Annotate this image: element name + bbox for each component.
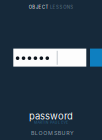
staticText: A: [52, 120, 54, 124]
staticText: J: [36, 5, 38, 10]
staticText: L: [35, 130, 38, 136]
staticText: L: [58, 120, 60, 124]
staticText: C: [42, 5, 45, 10]
staticText: S: [60, 5, 63, 10]
staticText: E: [38, 5, 41, 10]
staticText: E: [66, 120, 68, 124]
staticText: O: [38, 130, 42, 136]
staticText: N: [67, 5, 70, 10]
staticText: B: [32, 5, 35, 10]
staticText: L: [50, 5, 52, 10]
staticText: A: [37, 120, 39, 124]
staticText: B: [58, 130, 61, 136]
staticText: N: [46, 120, 49, 124]
staticText: O: [43, 130, 47, 136]
staticText: M: [34, 120, 37, 124]
staticText: T: [45, 5, 48, 10]
staticText: S: [54, 130, 57, 136]
staticText: O: [29, 5, 32, 10]
staticText: U: [61, 130, 65, 136]
staticText: S: [70, 5, 73, 10]
staticText: U: [55, 120, 58, 124]
staticText: T: [42, 120, 44, 124]
staticText: R: [66, 130, 69, 136]
staticText: I: [44, 120, 45, 124]
staticText: B: [31, 130, 34, 136]
button[interactable]: Submit password: [90, 49, 102, 67]
staticText: O: [63, 5, 66, 10]
staticText: S: [56, 5, 59, 10]
staticText: M: [48, 130, 53, 136]
staticText: P: [50, 120, 52, 124]
staticText: R: [40, 120, 42, 124]
staticText: Y: [70, 130, 74, 136]
staticText: E: [52, 5, 55, 10]
staticText: password: [29, 110, 73, 122]
staticText: E: [61, 120, 63, 124]
staticText: V: [64, 120, 66, 124]
